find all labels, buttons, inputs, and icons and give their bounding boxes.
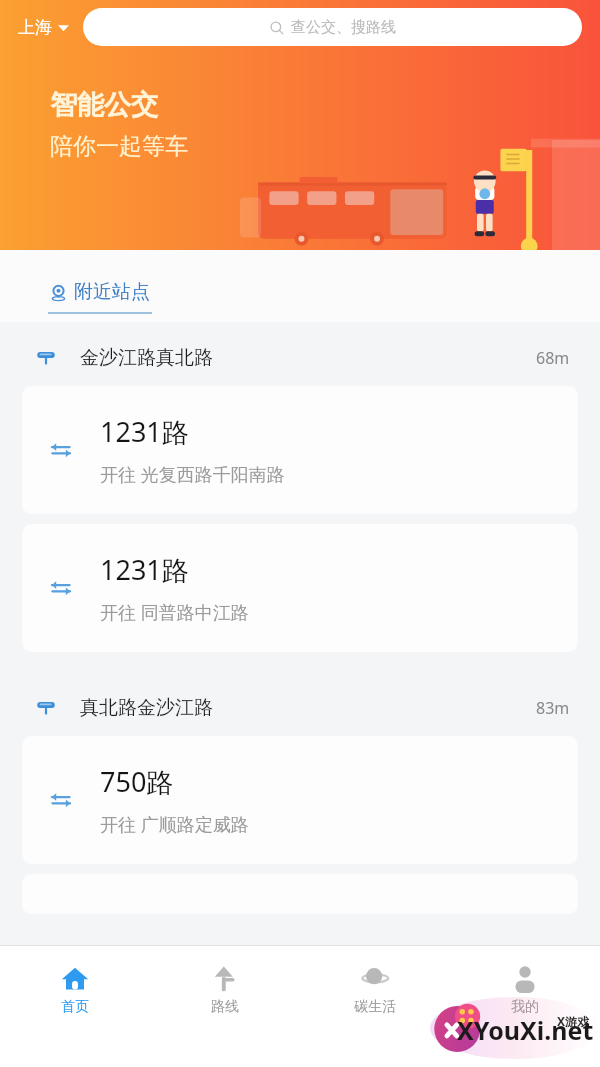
staticText: 查公交、搜路线 — [291, 18, 396, 37]
button[interactable]: 750路 — [22, 736, 578, 864]
staticText: 我的 — [511, 998, 539, 1016]
button[interactable]: 附近站点 — [44, 280, 156, 322]
staticText: 1231路 — [100, 413, 189, 450]
staticText: 上海 — [18, 17, 52, 38]
staticText: 开往 同普路中江路 — [100, 600, 249, 625]
button[interactable]: 碳生活 — [300, 959, 450, 1020]
staticText: 碳生活 — [354, 998, 396, 1016]
staticText: 1231路 — [100, 551, 189, 588]
staticText: X游戏 — [557, 1013, 590, 1029]
button[interactable]: 1231路 — [22, 524, 578, 652]
staticText: 750路 — [100, 763, 174, 800]
button[interactable]: Bus stop — [0, 330, 600, 386]
staticText: 金沙江路真北路 — [80, 346, 213, 370]
staticText: 附近站点 — [74, 280, 150, 304]
button[interactable]: 上海 — [14, 13, 73, 42]
button[interactable]: 首页 — [0, 959, 150, 1020]
staticText: 首页 — [61, 998, 89, 1016]
staticText: 陪你一起等车 — [50, 132, 188, 161]
button[interactable]: 1231路 — [22, 386, 578, 514]
staticText: 83m — [536, 697, 570, 719]
button[interactable]: Bus stop — [0, 680, 600, 736]
other: Bus stop — [36, 698, 56, 718]
staticText: 智能公交 — [50, 88, 158, 122]
button[interactable]: 查公交、搜路线 — [83, 8, 582, 46]
staticText: 路线 — [211, 998, 239, 1016]
button[interactable]: 路线 — [150, 959, 300, 1020]
staticText: 真北路金沙江路 — [80, 696, 213, 720]
button[interactable]: 我的 — [450, 959, 600, 1020]
staticText: 68m — [536, 347, 570, 369]
staticText: XYouXi.net — [457, 1013, 594, 1047]
staticText: 开往 光复西路千阳南路 — [100, 462, 285, 487]
other: Bus stop — [36, 348, 56, 368]
staticText: 开往 广顺路定威路 — [100, 812, 249, 837]
